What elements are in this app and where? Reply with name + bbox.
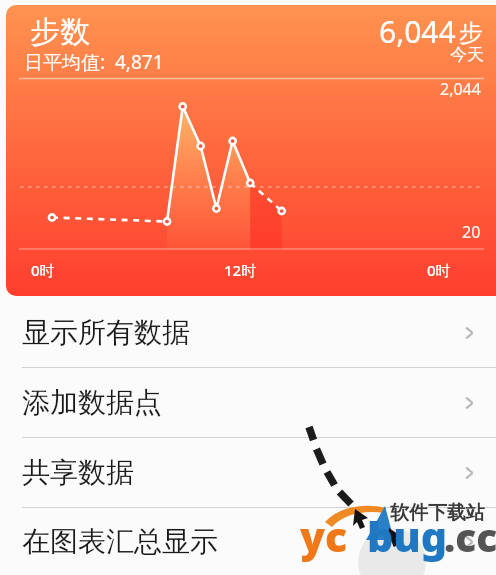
staticText: 日平均值: 4,871: [24, 49, 164, 75]
button[interactable]: 显示所有数据: [0, 298, 496, 367]
staticText: 20: [462, 221, 481, 243]
button[interactable]: 添加数据点: [0, 368, 496, 437]
staticText: 2,044: [440, 78, 481, 100]
staticText: 添加数据点: [22, 385, 162, 420]
staticText: 共享数据: [22, 455, 134, 490]
staticText: 步: [459, 18, 483, 48]
staticText: 0时: [31, 260, 55, 280]
staticText: .cc: [444, 510, 496, 563]
staticText: 今天: [450, 44, 484, 65]
staticText: 0时: [427, 260, 451, 280]
staticText: 在图表汇总显示: [22, 524, 218, 559]
staticText: 6,044: [379, 11, 456, 52]
button[interactable]: 在图表汇总显示: [0, 508, 496, 575]
staticText: 12时: [224, 260, 257, 280]
staticText: yc: [300, 508, 348, 564]
staticText: 步数: [30, 13, 90, 51]
button[interactable]: 共享数据: [0, 438, 496, 507]
staticText: bug: [367, 508, 448, 564]
staticText: 软件下载站: [390, 501, 485, 525]
staticText: 显示所有数据: [22, 315, 190, 350]
